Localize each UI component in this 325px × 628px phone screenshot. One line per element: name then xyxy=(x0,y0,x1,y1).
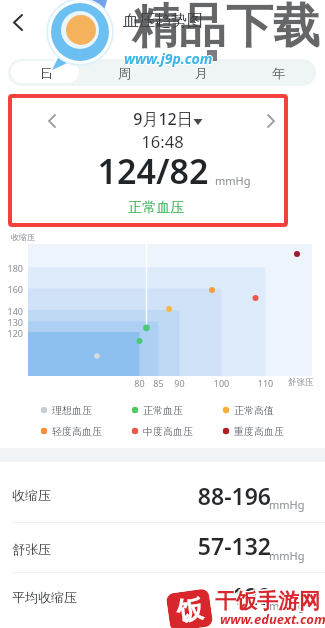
button[interactable] xyxy=(6,8,36,38)
staticText: 正常血压 xyxy=(38,199,275,217)
staticText: 理想血压 xyxy=(52,404,325,417)
staticText: 干饭手游网 xyxy=(216,589,325,615)
staticText: 周 xyxy=(118,65,131,81)
staticText: 收缩压 xyxy=(11,232,325,242)
staticText: 110 xyxy=(254,377,277,389)
button[interactable] xyxy=(11,61,79,83)
staticText: 干饭手游网 xyxy=(214,587,325,613)
staticText: www.j9p.com xyxy=(124,50,325,69)
button[interactable] xyxy=(120,106,210,132)
staticText: mmHg xyxy=(215,173,325,188)
staticText: www.eduext.com xyxy=(220,610,325,628)
staticText: 干饭手游网 xyxy=(215,589,325,615)
staticText: 正常高值 xyxy=(234,404,325,417)
staticText: 180 xyxy=(0,262,23,274)
button[interactable]: 周 xyxy=(86,59,162,86)
button[interactable]: 月 xyxy=(163,59,239,86)
staticText: 年 xyxy=(272,65,285,81)
staticText: mmHg xyxy=(269,497,325,512)
button[interactable] xyxy=(259,108,283,132)
staticText: 饭 xyxy=(175,592,205,628)
staticText: 舒张压 xyxy=(288,377,325,388)
staticText: 85 xyxy=(147,377,170,389)
staticText: 干饭手游网 xyxy=(215,587,325,613)
staticText: 收缩压 xyxy=(12,487,325,503)
staticText: 月 xyxy=(195,65,208,81)
staticText: 正常血压 xyxy=(143,404,325,417)
staticText: 120 xyxy=(0,327,23,339)
staticText: 57-132 xyxy=(120,530,271,561)
staticText: 血压趋势图 xyxy=(103,11,223,31)
staticText: 100 xyxy=(210,377,233,389)
staticText: www.j9p.com xyxy=(123,49,325,68)
staticText: mmHg xyxy=(269,598,325,613)
staticText: 128 xyxy=(120,580,271,611)
staticText: www.j9p.com xyxy=(124,49,325,68)
staticText: 124/82 xyxy=(38,148,268,194)
staticText: 日 xyxy=(9,65,84,81)
staticText: 160 xyxy=(0,283,23,295)
staticText: www.eduext.com xyxy=(221,610,325,628)
staticText: 130 xyxy=(0,316,23,328)
staticText: www.j9p.com xyxy=(125,49,325,68)
staticText: 干饭手游网 xyxy=(216,587,325,613)
staticText: 平均收缩压 xyxy=(12,589,325,605)
staticText: www.eduext.com xyxy=(219,610,325,628)
staticText: www.eduext.com xyxy=(220,611,325,628)
staticText: 干饭手游网 xyxy=(216,588,325,614)
staticText: 90 xyxy=(168,377,191,389)
staticText: 干饭手游网 xyxy=(214,589,325,615)
button[interactable]: 年 xyxy=(240,59,316,86)
staticText: 88-196 xyxy=(120,480,271,511)
staticText: 重度高血压 xyxy=(234,425,325,438)
staticText: 轻度高血压 xyxy=(52,425,325,438)
staticText: 140 xyxy=(0,305,23,317)
staticText: 干饭手游网 xyxy=(215,588,325,614)
staticText: 舒张压 xyxy=(12,541,325,557)
staticText: mmHg xyxy=(269,548,325,563)
staticText: 精品下载 xyxy=(132,0,325,56)
staticText: www.eduext.com xyxy=(220,609,325,627)
staticText: 80 xyxy=(128,377,151,389)
staticText: www.j9p.com xyxy=(124,48,325,67)
staticText: 中度高血压 xyxy=(143,425,325,438)
button[interactable] xyxy=(0,462,325,522)
staticText: 9月12日 xyxy=(103,108,223,130)
button[interactable] xyxy=(40,108,64,132)
staticText: 16:48 xyxy=(103,130,222,152)
staticText: 干饭手游网 xyxy=(214,588,325,614)
